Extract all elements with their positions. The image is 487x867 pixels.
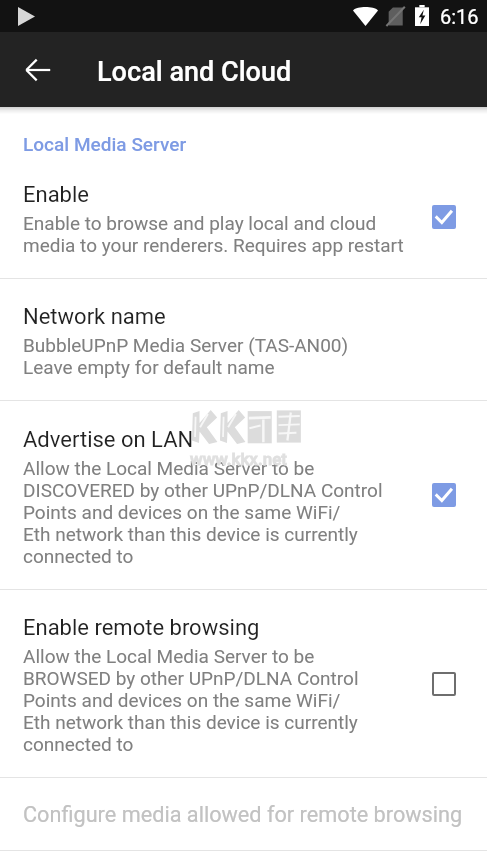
staticText: 6:16 bbox=[440, 5, 479, 28]
button[interactable]: Checked bbox=[420, 471, 468, 519]
button[interactable]: Checked bbox=[420, 193, 468, 241]
button[interactable]: Configure media allowed for remote brows… bbox=[0, 778, 487, 850]
button[interactable]: Enable remote browsing bbox=[0, 590, 487, 777]
staticText: Advertise on LAN bbox=[23, 427, 194, 453]
staticText: BubbleUPnP Media Server (TAS-AN00) Leave… bbox=[23, 334, 349, 378]
staticText: Allow the Local Media Server to be DISCO… bbox=[23, 457, 383, 567]
staticText: Configure media allowed for remote brows… bbox=[23, 802, 463, 827]
button[interactable]: Back bbox=[14, 46, 62, 94]
button[interactable]: Enable bbox=[0, 155, 487, 278]
button[interactable]: Network name bbox=[0, 279, 487, 400]
staticText: Enable remote browsing bbox=[23, 615, 260, 641]
staticText: Network name bbox=[23, 304, 166, 330]
staticText: Local and Cloud bbox=[97, 56, 292, 88]
staticText: Local Media Server bbox=[23, 133, 187, 155]
staticText: www.kkx.net bbox=[190, 449, 287, 469]
staticText: Enable to browse and play local and clou… bbox=[23, 212, 404, 256]
button[interactable]: Unchecked bbox=[420, 660, 468, 708]
staticText: Allow the Local Media Server to be BROWS… bbox=[23, 645, 359, 755]
button[interactable]: Advertise on LAN bbox=[0, 401, 487, 589]
staticText: Enable bbox=[23, 182, 89, 208]
